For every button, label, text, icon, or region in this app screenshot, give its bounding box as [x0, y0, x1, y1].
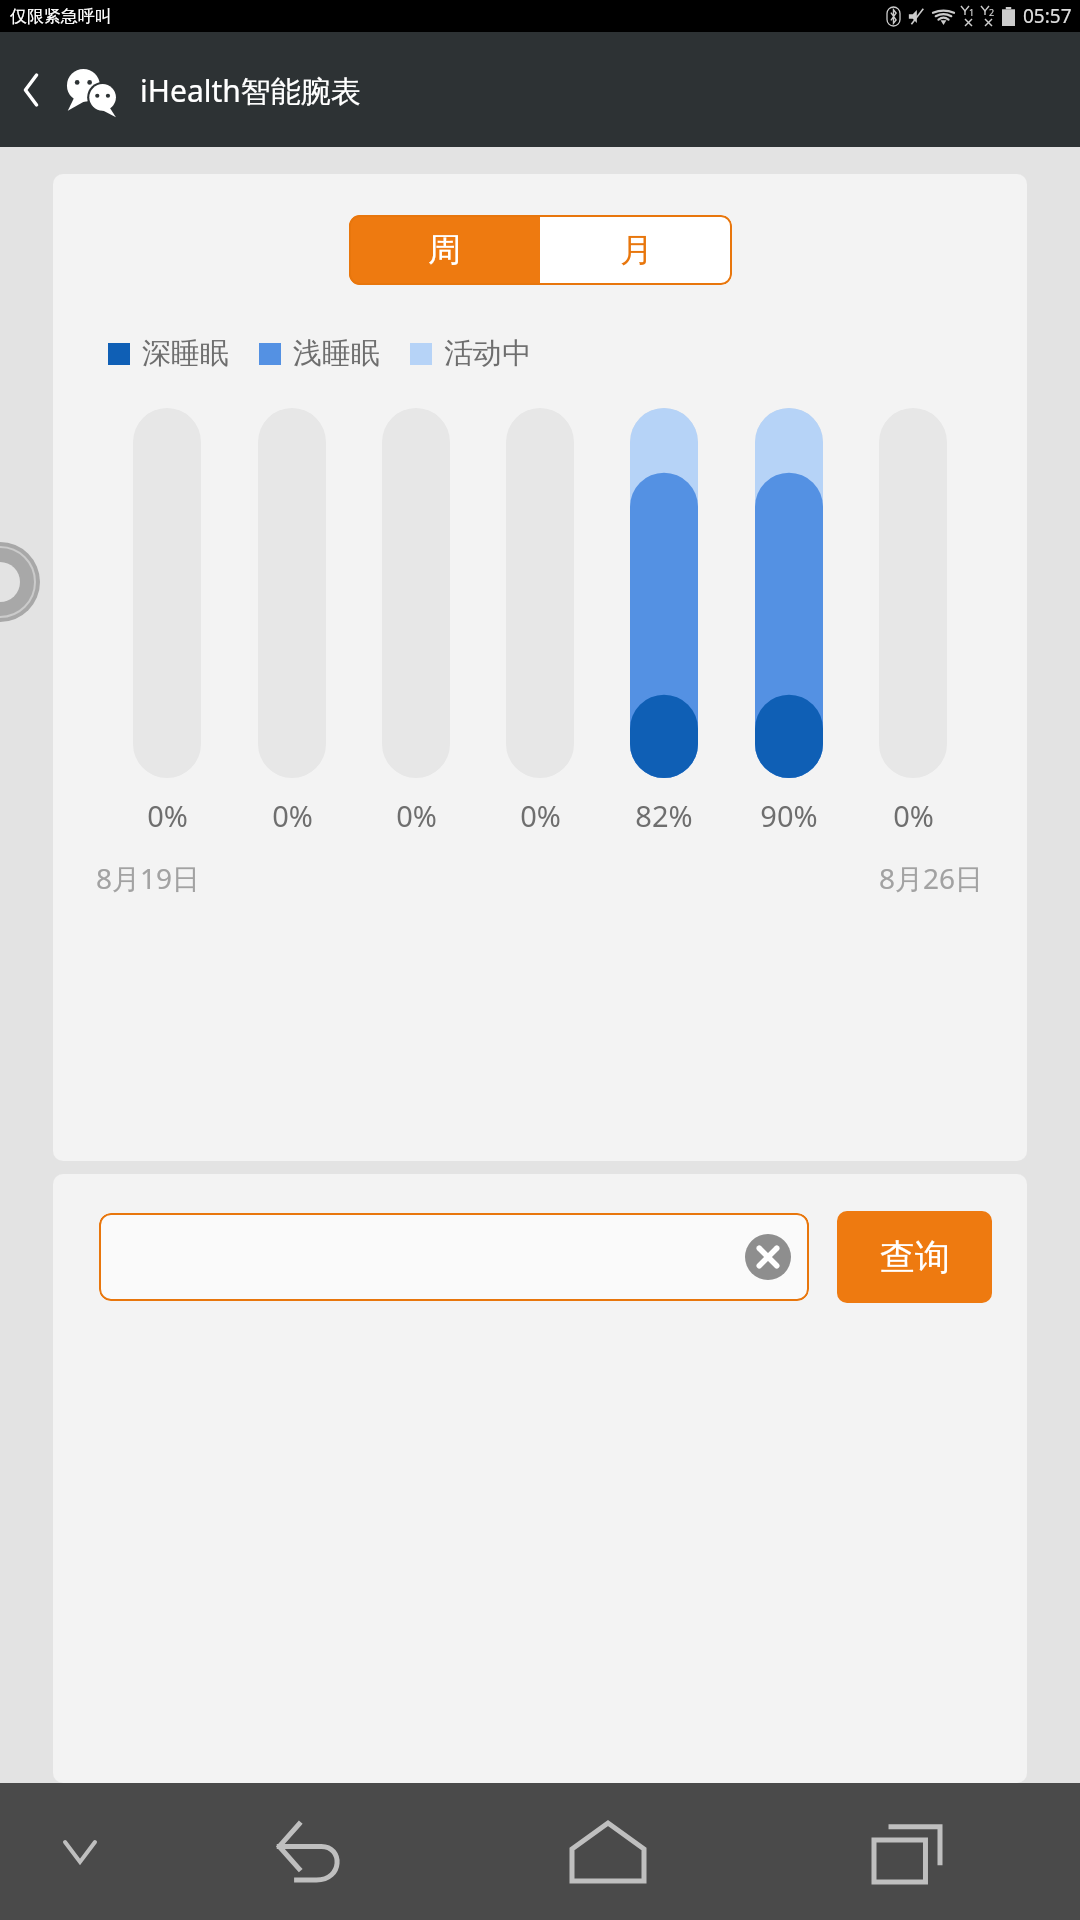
staticText: 2	[989, 6, 995, 18]
staticText: 8月19日	[96, 859, 201, 897]
staticText: 82%	[635, 796, 693, 835]
staticText: 0%	[520, 796, 561, 835]
button[interactable]: Clear	[99, 1213, 809, 1301]
staticText: 浅睡眠	[293, 335, 380, 372]
button[interactable]: Back	[160, 1783, 458, 1920]
button[interactable]: 查询	[837, 1211, 992, 1303]
staticText: 8月26日	[879, 859, 984, 897]
button[interactable]: Clear	[745, 1234, 791, 1280]
staticText: 仅限紧急呼叫	[10, 6, 112, 27]
button[interactable]: Home	[458, 1783, 757, 1920]
button[interactable]: Back	[0, 59, 62, 121]
staticText: 活动中	[444, 335, 531, 372]
staticText: 0%	[272, 796, 313, 835]
staticText: 1	[969, 6, 975, 18]
staticText: 90%	[760, 796, 818, 835]
button[interactable]: Recent apps	[757, 1783, 1056, 1920]
staticText: 月	[620, 229, 653, 271]
button[interactable]: 周	[349, 215, 540, 285]
staticText: 周	[428, 229, 461, 271]
staticText: 0%	[396, 796, 437, 835]
button[interactable]: Hide keyboard	[0, 1783, 160, 1920]
staticText: 深睡眠	[142, 335, 229, 372]
staticText: 查询	[880, 1235, 950, 1279]
staticText: 0%	[147, 796, 188, 835]
button[interactable]: 月	[540, 215, 732, 285]
staticText: 0%	[893, 796, 934, 835]
staticText: iHealth智能腕表	[140, 70, 361, 111]
staticText: 05:57	[1023, 3, 1072, 29]
